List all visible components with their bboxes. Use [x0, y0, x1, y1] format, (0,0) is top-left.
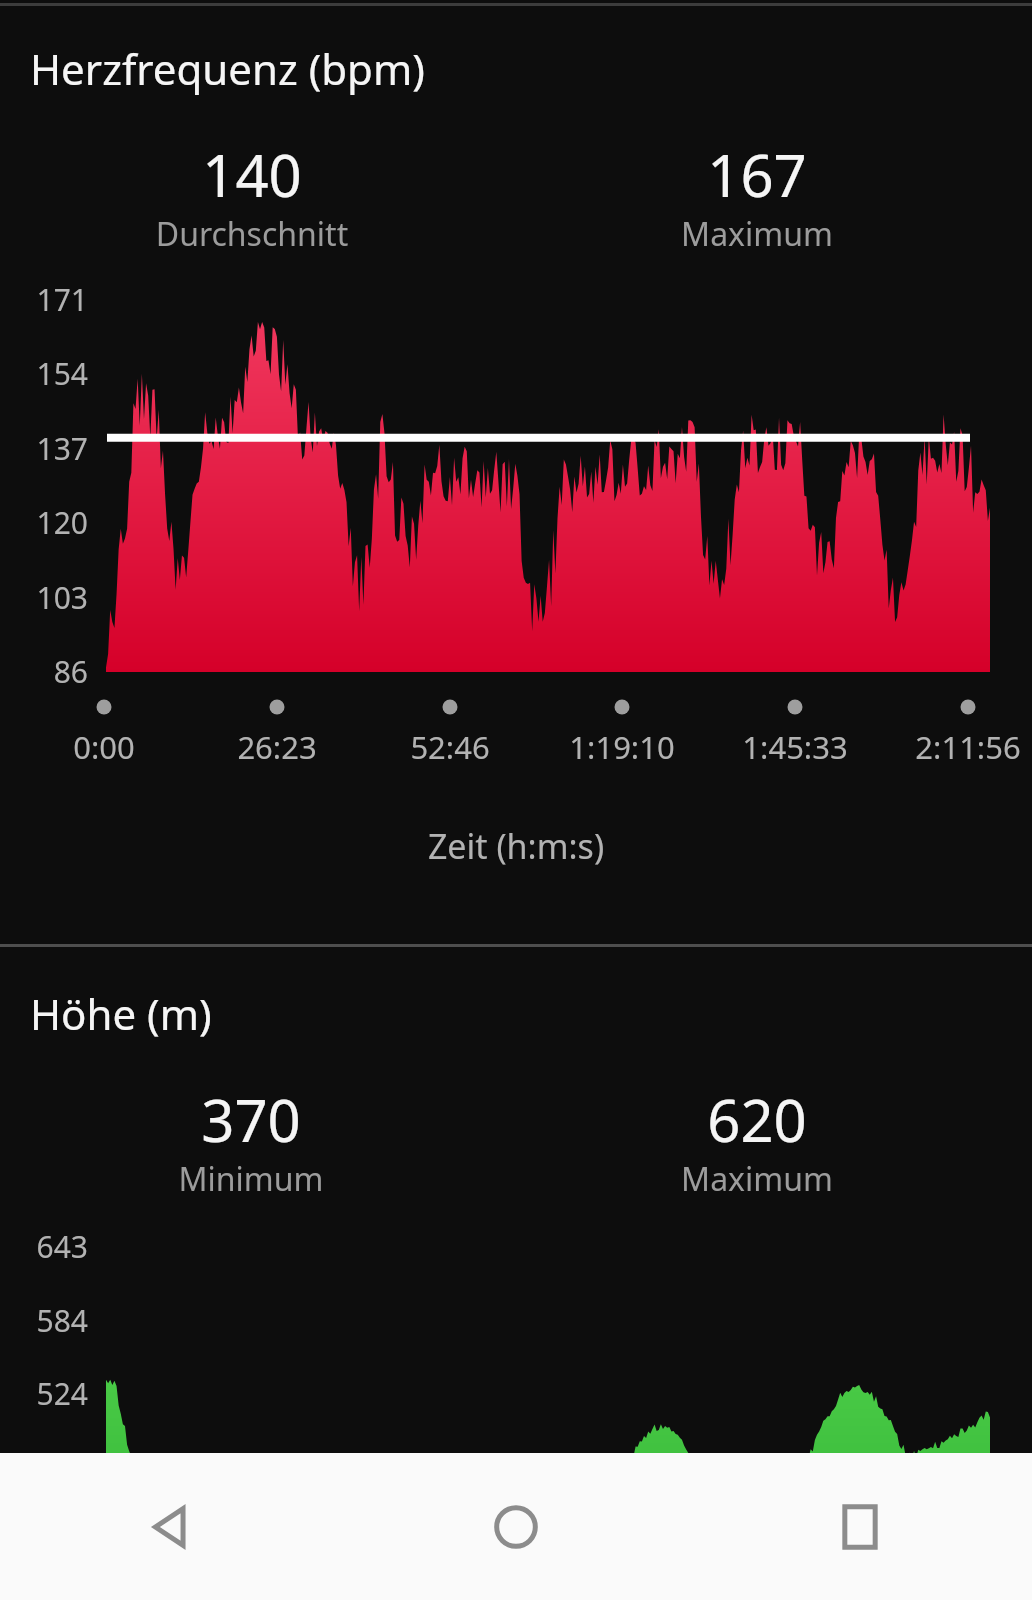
- staticText: 171: [0, 279, 88, 320]
- button[interactable]: Recents: [688, 1453, 1032, 1600]
- staticText: 167: [607, 135, 907, 214]
- button[interactable]: Back: [0, 1453, 344, 1600]
- staticText: 643: [0, 1226, 88, 1267]
- staticText: 26:23: [167, 726, 387, 768]
- staticText: 86: [0, 651, 88, 692]
- staticText: 52:46: [340, 726, 560, 768]
- staticText: 620: [607, 1080, 907, 1159]
- staticText: 370: [101, 1080, 401, 1159]
- staticText: 1:45:33: [685, 726, 905, 768]
- staticText: Durchschnitt: [52, 212, 452, 256]
- staticText: Maximum: [557, 212, 957, 256]
- staticText: Minimum: [51, 1157, 451, 1201]
- staticText: 1:19:10: [512, 726, 732, 768]
- staticText: 103: [0, 577, 88, 618]
- staticText: Höhe (m): [30, 985, 630, 1042]
- button[interactable]: Home: [344, 1453, 688, 1600]
- staticText: Zeit (h:m:s): [266, 823, 766, 869]
- staticText: 120: [0, 502, 88, 543]
- staticText: 524: [0, 1373, 88, 1414]
- staticText: 584: [0, 1300, 88, 1341]
- staticText: 2:11:56: [858, 726, 1032, 768]
- staticText: Maximum: [557, 1157, 957, 1201]
- staticText: 0:00: [0, 726, 214, 768]
- staticText: Herzfrequenz (bpm): [30, 40, 730, 97]
- staticText: 137: [0, 428, 88, 469]
- staticText: 140: [102, 135, 402, 214]
- staticText: 154: [0, 353, 88, 394]
